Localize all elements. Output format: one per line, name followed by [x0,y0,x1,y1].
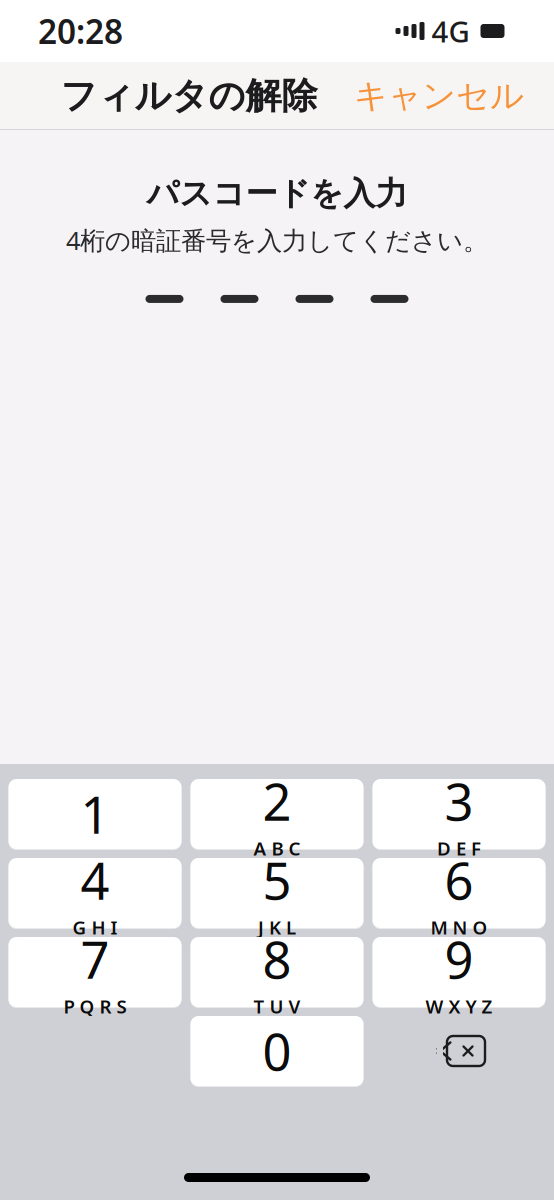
button[interactable]: 9 [372,937,545,1007]
button[interactable]: キャンセル [348,65,530,126]
staticText: 7 [80,925,109,993]
staticText: 4 [80,846,109,914]
staticText: 5 [262,846,291,914]
staticText: 0 [262,1017,291,1085]
staticText: 9 [444,925,473,993]
staticText: 3 [444,767,473,835]
staticText: キャンセル [354,75,524,116]
staticText: T U V [253,994,300,1018]
staticText: A B C [253,836,300,860]
staticText: J K L [258,915,296,939]
button[interactable]: Delete [372,1016,545,1086]
button[interactable]: 3 [372,779,545,849]
button[interactable]: 1 [8,779,181,849]
staticText: 6 [444,846,473,914]
staticText: M N O [430,915,487,939]
staticText: D E F [437,836,481,860]
staticText: 20:28 [38,9,123,53]
button[interactable]: 4 [8,858,181,928]
staticText: P Q R S [63,994,126,1018]
staticText: W X Y Z [425,994,492,1018]
staticText: パスコードを入力 [146,174,407,213]
staticText: 2 [262,767,291,835]
staticText: フィルタの解除 [60,74,317,118]
staticText: 4G [431,11,469,50]
staticText: G H I [72,915,117,939]
button[interactable]: 6 [372,858,545,928]
staticText: 8 [262,925,291,993]
staticText: 4桁の暗証番号を入力してください。 [66,223,488,257]
button[interactable]: 0 [190,1016,363,1086]
button[interactable]: 7 [8,937,181,1007]
button[interactable]: 2 [190,779,363,849]
staticText: 1 [80,780,109,848]
button[interactable]: 5 [190,858,363,928]
button[interactable]: 8 [190,937,363,1007]
